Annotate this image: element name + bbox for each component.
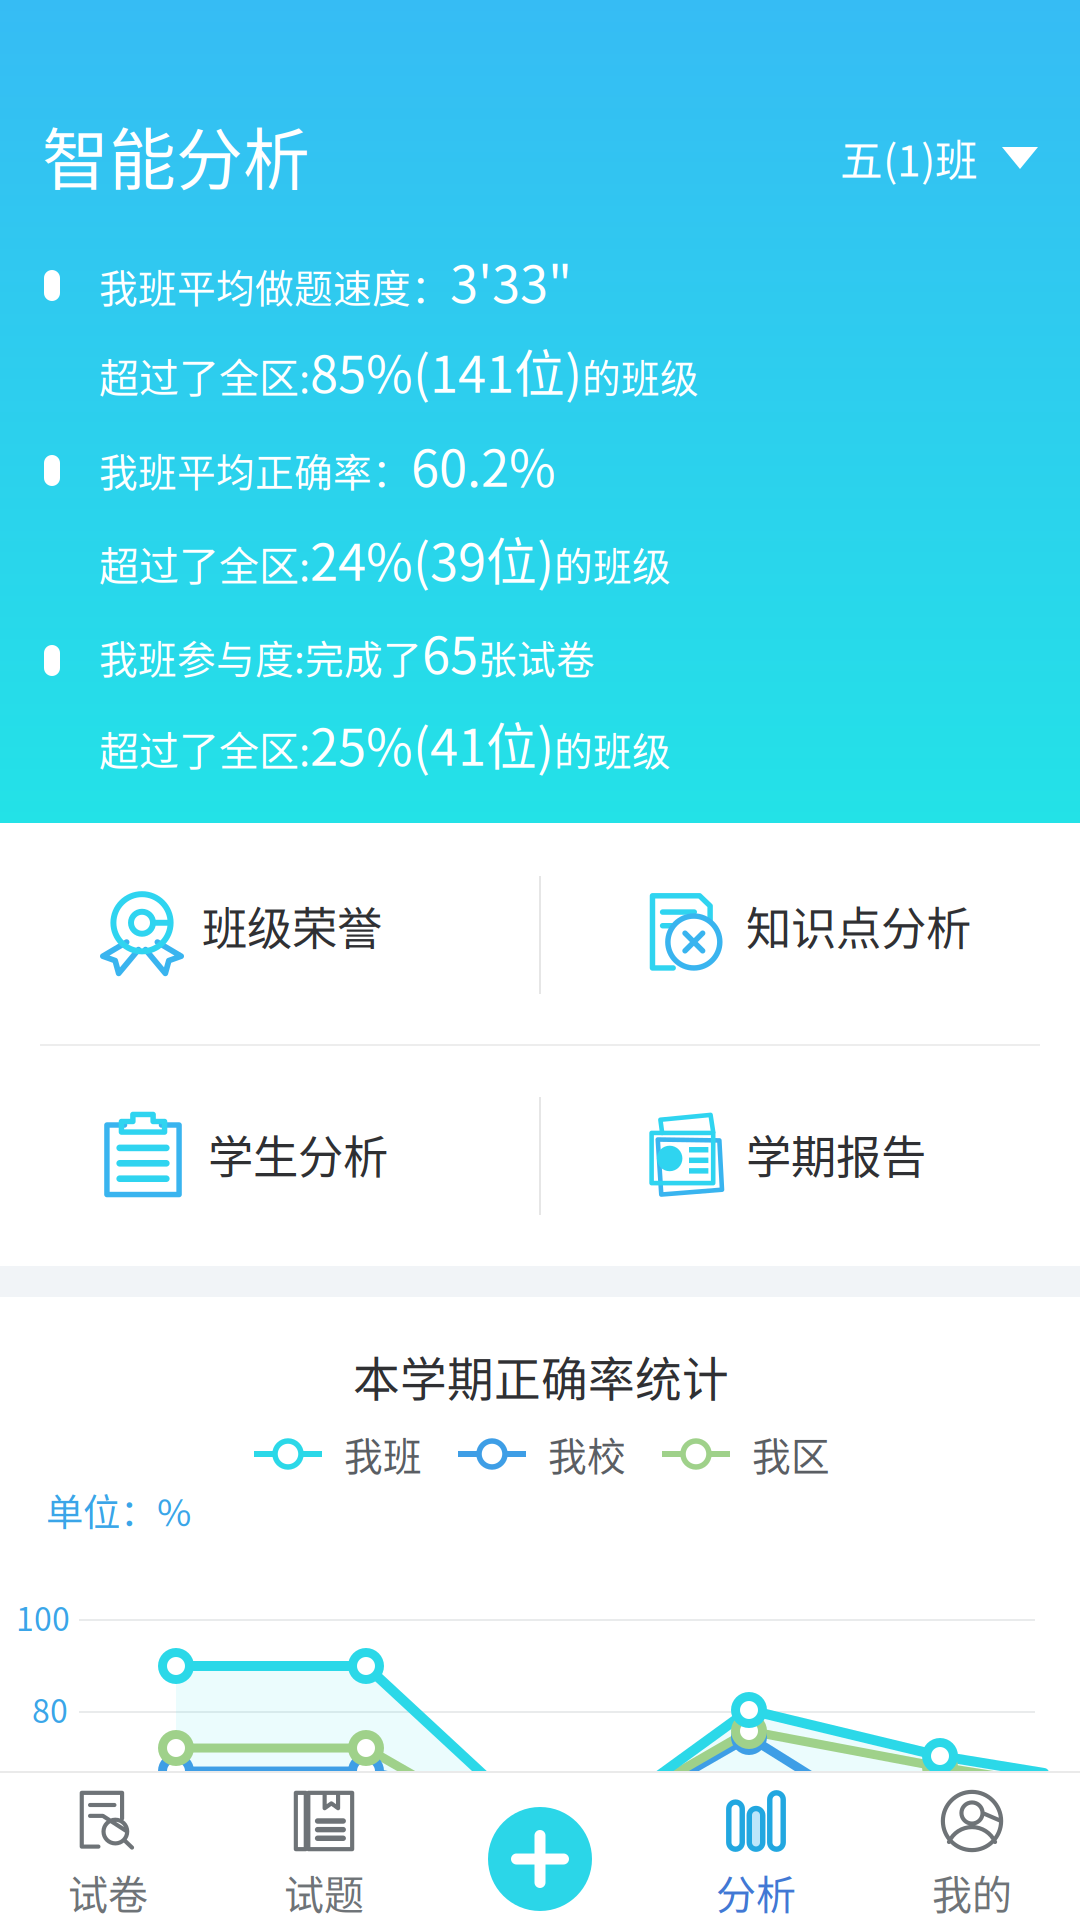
staticText: 智能分析 — [42, 107, 310, 203]
staticText: 3'33" — [450, 244, 572, 317]
staticText: 我校 — [548, 1426, 626, 1482]
staticText: 单位：% — [46, 1483, 191, 1537]
staticText: 我班平均正确率： — [99, 442, 411, 498]
button[interactable]: Add — [488, 1807, 592, 1911]
button[interactable]: 我的 — [864, 1773, 1080, 1920]
staticText: 学生分析 — [208, 1121, 388, 1187]
staticText: 本学期正确率统计 — [353, 1342, 729, 1410]
button[interactable]: 五(1)班 — [840, 128, 1038, 188]
staticText: 我的 — [932, 1863, 1012, 1920]
staticText: 超过了全区: — [99, 534, 310, 592]
staticText: 25%(41位) — [310, 707, 554, 780]
button[interactable]: 学期报告 — [540, 1044, 1080, 1265]
staticText: 张试卷 — [478, 629, 595, 685]
staticText: 我班平均做题速度： — [99, 258, 450, 314]
staticText: 的班级 — [554, 536, 671, 592]
staticText: 知识点分析 — [746, 893, 971, 959]
staticText: 超过了全区: — [99, 719, 310, 777]
button[interactable]: 试题 — [216, 1773, 432, 1920]
staticText: 我班 — [344, 1426, 422, 1482]
button[interactable]: 试卷 — [0, 1773, 216, 1920]
staticText: 65 — [422, 615, 478, 688]
staticText: 我班参与度:完成了 — [99, 629, 422, 685]
staticText: 85%(141位) — [310, 334, 582, 407]
button[interactable]: 知识点分析 — [540, 823, 1080, 1044]
staticText: 分析 — [716, 1863, 796, 1920]
staticText: 班级荣誉 — [202, 893, 382, 959]
staticText: 80 — [32, 1686, 68, 1732]
staticText: 24%(39位) — [310, 522, 554, 595]
staticText: 60.2% — [411, 428, 556, 501]
staticText: 五(1)班 — [840, 127, 978, 189]
button[interactable]: 分析 — [648, 1773, 864, 1920]
button[interactable]: 班级荣誉 — [0, 823, 540, 1044]
staticText: 超过了全区: — [99, 346, 310, 404]
staticText: 我区 — [752, 1426, 830, 1482]
staticText: 的班级 — [554, 721, 671, 777]
staticText: 100 — [16, 1594, 70, 1640]
staticText: 的班级 — [582, 348, 699, 404]
staticText: 试卷 — [68, 1863, 148, 1920]
staticText: 试题 — [284, 1863, 364, 1920]
button[interactable]: 学生分析 — [0, 1044, 540, 1265]
staticText: 学期报告 — [746, 1121, 926, 1187]
